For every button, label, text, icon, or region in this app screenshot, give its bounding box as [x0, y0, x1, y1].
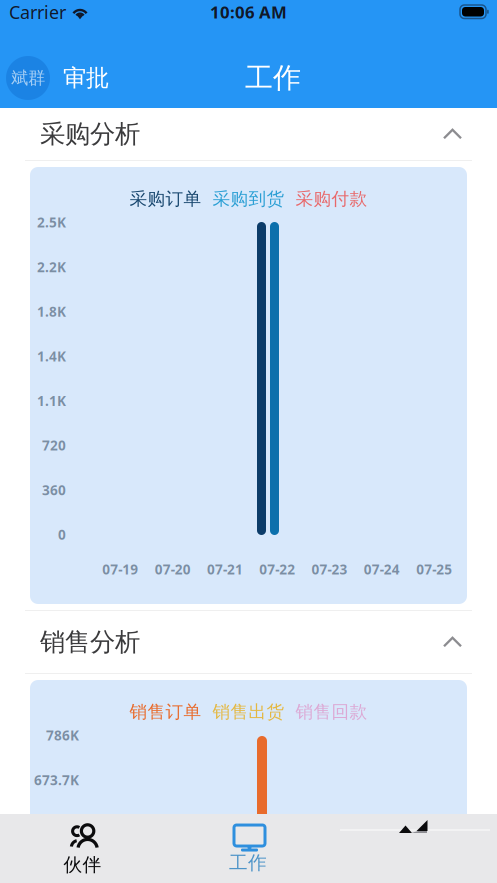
staticText: 销售分析 — [40, 626, 140, 658]
staticText: 伙伴 — [63, 853, 101, 876]
staticText: 1.4K — [37, 347, 66, 365]
staticText: 07-23 — [311, 560, 347, 578]
staticText: 审批 — [63, 63, 109, 93]
staticText: 采购付款 — [295, 188, 367, 210]
staticText: 0 — [58, 525, 66, 544]
staticText: 673.7K — [34, 771, 79, 789]
staticText: 采购订单 — [129, 188, 201, 210]
button[interactable]: 报表 — [331, 814, 497, 883]
staticText: 10:06 AM — [210, 0, 287, 23]
staticText: 360 — [42, 481, 66, 499]
staticText: 采购到货 — [212, 188, 284, 210]
staticText: 720 — [42, 436, 66, 454]
button[interactable]: 采购分析 — [0, 108, 497, 160]
staticText: 07-25 — [416, 560, 452, 578]
staticText: 07-24 — [364, 560, 400, 578]
staticText: 1.1K — [37, 391, 66, 410]
staticText: 07-21 — [207, 560, 243, 578]
staticText: 销售回款 — [295, 701, 367, 723]
staticText: 销售出货 — [212, 701, 284, 723]
staticText: 斌群 — [11, 67, 45, 89]
staticText: 采购分析 — [40, 118, 140, 150]
button[interactable]: 伙伴 — [0, 814, 165, 883]
staticText: 销售订单 — [129, 701, 201, 723]
staticText: 07-19 — [102, 560, 138, 578]
staticText: 工作 — [229, 851, 267, 874]
button[interactable]: 工作 — [165, 814, 331, 883]
staticText: 07-22 — [259, 560, 295, 578]
staticText: 07-20 — [155, 560, 191, 578]
staticText: 786K — [46, 726, 79, 744]
staticText: 2.2K — [37, 258, 66, 276]
staticText: Carrier — [9, 0, 66, 24]
staticText: 工作 — [245, 60, 301, 96]
button[interactable]: 销售分析 — [0, 611, 497, 673]
button[interactable]: 斌群 — [0, 52, 119, 104]
staticText: 1.8K — [37, 302, 66, 321]
staticText: 2.5K — [37, 213, 66, 231]
